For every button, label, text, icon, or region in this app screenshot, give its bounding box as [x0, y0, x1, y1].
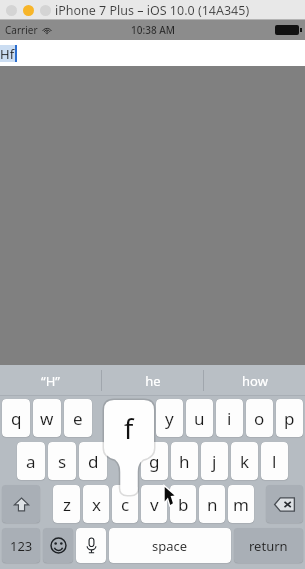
button[interactable]: he: [102, 365, 203, 396]
button[interactable]: e: [64, 399, 92, 437]
button[interactable]: [126, 399, 153, 437]
staticText: 10:38 AM: [131, 23, 175, 37]
staticText: e: [73, 407, 83, 430]
staticText: z: [63, 493, 71, 516]
button[interactable]: c: [112, 485, 138, 523]
button[interactable]: m: [228, 485, 254, 523]
staticText: d: [88, 450, 99, 473]
button[interactable]: Zoom: [40, 5, 51, 16]
button[interactable]: space: [109, 528, 231, 563]
staticText: 123: [10, 537, 33, 555]
staticText: Hf: [0, 45, 15, 62]
staticText: m: [233, 493, 249, 516]
button[interactable]: k: [231, 442, 258, 480]
staticText: l: [272, 450, 277, 473]
button[interactable]: Backspace: [266, 485, 303, 523]
button[interactable]: h: [171, 442, 198, 480]
staticText: q: [11, 407, 22, 430]
button[interactable]: [95, 399, 123, 437]
button[interactable]: how: [204, 365, 305, 396]
staticText: iPhone 7 Plus – iOS 10.0 (14A345): [55, 2, 250, 19]
staticText: s: [58, 450, 67, 473]
staticText: j: [212, 450, 217, 473]
button[interactable]: i: [216, 399, 243, 437]
staticText: x: [92, 493, 101, 516]
staticText: b: [178, 493, 189, 516]
staticText: u: [194, 407, 205, 430]
button[interactable]: Shift: [2, 485, 40, 523]
staticText: h: [179, 450, 190, 473]
button[interactable]: n: [199, 485, 225, 523]
staticText: n: [207, 493, 218, 516]
button[interactable]: u: [186, 399, 213, 437]
staticText: f: [124, 410, 134, 447]
button[interactable]: p: [276, 399, 303, 437]
button[interactable]: l: [261, 442, 288, 480]
staticText: y: [165, 407, 174, 430]
button[interactable]: 123: [2, 528, 40, 563]
button[interactable]: q: [2, 399, 30, 437]
button[interactable]: d: [79, 442, 107, 480]
button[interactable]: “H”: [0, 365, 101, 396]
staticText: i: [227, 407, 232, 430]
button[interactable]: Minimize: [23, 5, 34, 16]
staticText: v: [150, 493, 159, 516]
staticText: Carrier: [5, 23, 38, 37]
staticText: he: [145, 372, 161, 390]
button[interactable]: z: [53, 485, 80, 523]
button[interactable]: Emoji: [43, 528, 73, 563]
staticText: w: [40, 407, 54, 430]
button[interactable]: s: [48, 442, 76, 480]
staticText: p: [284, 407, 295, 430]
button[interactable]: v: [141, 485, 167, 523]
button[interactable]: b: [170, 485, 196, 523]
button[interactable]: Close: [6, 5, 17, 16]
staticText: how: [242, 372, 268, 390]
button[interactable]: j: [201, 442, 228, 480]
button[interactable]: [110, 442, 138, 480]
button[interactable]: a: [17, 442, 45, 480]
staticText: return: [249, 537, 288, 555]
button[interactable]: w: [33, 399, 61, 437]
staticText: “H”: [41, 372, 60, 390]
button[interactable]: g: [141, 442, 168, 480]
button[interactable]: y: [156, 399, 183, 437]
staticText: g: [149, 450, 160, 473]
button[interactable]: return: [234, 528, 303, 563]
staticText: c: [121, 493, 130, 516]
staticText: o: [254, 407, 265, 430]
staticText: a: [26, 450, 36, 473]
button[interactable]: x: [83, 485, 109, 523]
staticText: space: [152, 537, 188, 555]
staticText: k: [240, 450, 250, 473]
button[interactable]: o: [246, 399, 273, 437]
button[interactable]: Dictation: [76, 528, 106, 563]
